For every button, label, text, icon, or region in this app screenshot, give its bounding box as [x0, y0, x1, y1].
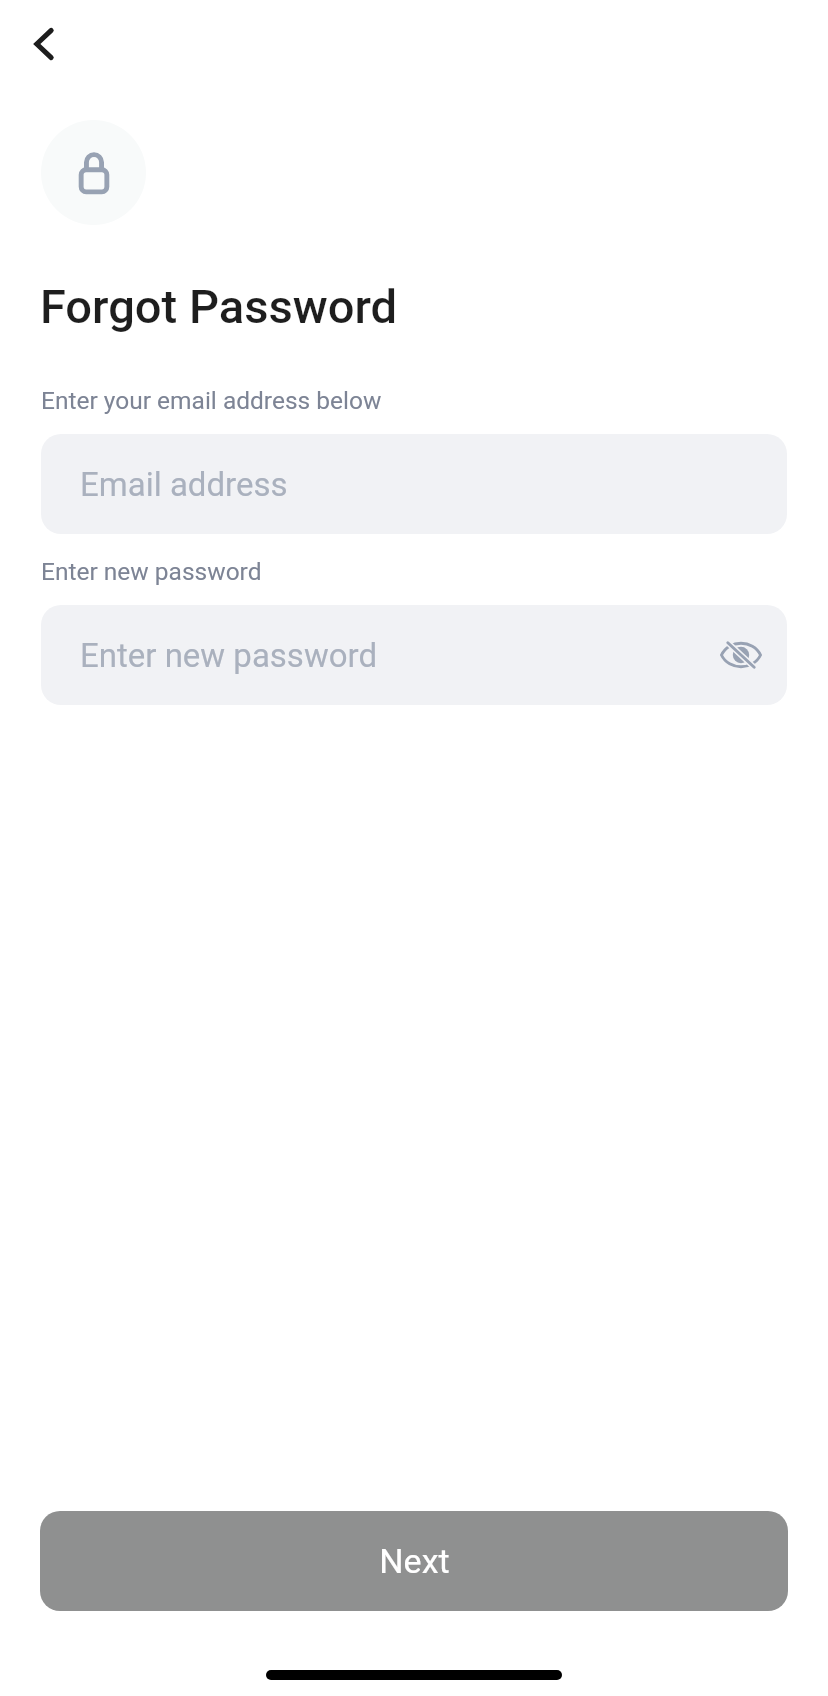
button[interactable]: Next: [40, 1511, 788, 1611]
staticText: Enter new password: [41, 557, 262, 586]
staticText: Enter your email address below: [41, 386, 382, 415]
button[interactable]: Show password: [705, 619, 777, 691]
button[interactable]: Back: [10, 10, 78, 78]
button[interactable]: Enter new password: [41, 605, 787, 705]
button[interactable]: Email address: [41, 434, 787, 534]
staticText: Next: [379, 1541, 450, 1581]
staticText: Enter new password: [80, 636, 377, 675]
staticText: Forgot Password: [40, 279, 398, 334]
staticText: Email address: [80, 465, 288, 504]
